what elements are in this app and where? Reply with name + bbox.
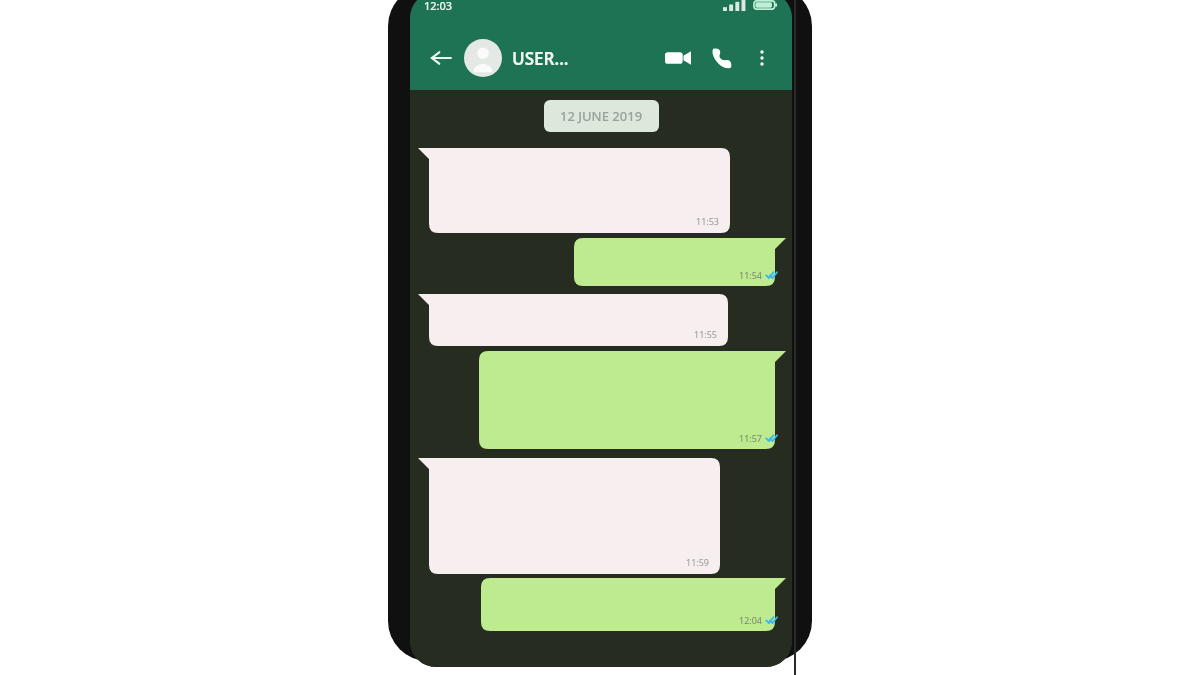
button[interactable]: More options	[744, 40, 780, 76]
button[interactable]: USER...	[512, 47, 569, 70]
staticText: 11:53	[696, 215, 720, 227]
button[interactable]: 11:57	[479, 351, 786, 449]
staticText: 12:03	[424, 0, 453, 13]
staticText: 11:57	[739, 432, 763, 444]
staticText: 11:55	[694, 328, 718, 340]
staticText: USER...	[512, 47, 569, 70]
staticText: 12:04	[739, 614, 763, 626]
button[interactable]: Contact photo	[464, 39, 502, 77]
button[interactable]: Voice call	[702, 38, 742, 78]
button[interactable]: 11:59	[418, 458, 720, 574]
button[interactable]: 11:54	[574, 238, 786, 286]
staticText: 11:59	[686, 556, 710, 568]
button[interactable]: 11:53	[418, 148, 730, 233]
button[interactable]: 12 JUNE 2019	[544, 100, 659, 132]
button[interactable]: 11:55	[418, 294, 728, 346]
button[interactable]: Video call	[658, 38, 698, 78]
button[interactable]: Back	[424, 41, 458, 75]
staticText: 11:54	[739, 269, 763, 281]
staticText: 12 JUNE 2019	[560, 107, 643, 125]
button[interactable]: 12:04	[481, 578, 786, 631]
